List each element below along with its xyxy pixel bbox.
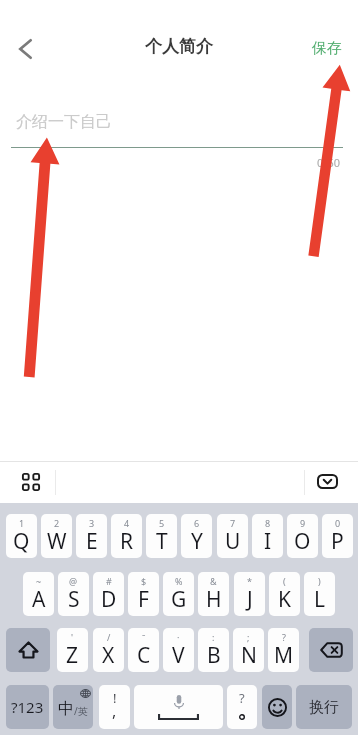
button[interactable]: ? — [227, 685, 257, 729]
staticText: A — [32, 585, 46, 614]
button[interactable]: Hide keyboard — [312, 467, 342, 495]
button[interactable]: ! — [99, 685, 130, 729]
button[interactable]: / — [93, 628, 124, 672]
staticText: T — [156, 527, 168, 556]
button[interactable]: Keyboard panels — [16, 467, 45, 496]
button[interactable]: Space — [134, 685, 223, 729]
staticText: : — [212, 631, 215, 643]
staticText: V — [172, 641, 185, 670]
staticText: G — [171, 585, 187, 614]
button[interactable]: 5 — [146, 514, 177, 558]
staticText: ' — [71, 631, 74, 643]
staticText: , — [112, 700, 117, 722]
button[interactable]: 1 — [6, 514, 37, 558]
staticText: 2 — [54, 517, 60, 529]
staticText: & — [210, 575, 217, 587]
button[interactable]: ?123 — [6, 685, 49, 729]
staticText: B — [207, 641, 221, 670]
staticText: D — [101, 585, 117, 614]
staticText: · — [177, 631, 180, 643]
staticText: Q — [13, 527, 30, 556]
staticText: ) — [318, 575, 321, 587]
button[interactable]: 9 — [287, 514, 318, 558]
button[interactable]: $ — [128, 572, 159, 616]
staticText: 9 — [300, 517, 306, 529]
button[interactable]: ~ — [23, 572, 54, 616]
staticText: ? — [239, 689, 245, 707]
button[interactable]: # — [93, 572, 124, 616]
staticText: 0/50 — [317, 155, 340, 170]
staticText: M — [274, 641, 294, 670]
button[interactable]: Backspace — [309, 628, 353, 672]
button[interactable]: · — [163, 628, 194, 672]
button[interactable]: 4 — [111, 514, 142, 558]
staticText: 6 — [194, 517, 200, 529]
staticText: /英 — [74, 704, 88, 718]
button[interactable]: @ — [58, 572, 89, 616]
button[interactable]: 保存 — [312, 39, 342, 58]
staticText: I — [264, 527, 272, 556]
button[interactable]: Shift — [6, 628, 50, 672]
staticText: ~ — [36, 575, 42, 587]
button[interactable]: & — [198, 572, 229, 616]
staticText: 3 — [89, 517, 95, 529]
button[interactable]: Emoji — [262, 685, 292, 729]
button[interactable]: ; — [233, 628, 264, 672]
staticText: 个人简介 — [145, 36, 213, 57]
button[interactable]: 7 — [217, 514, 248, 558]
staticText: U — [225, 527, 241, 556]
button[interactable]: ? — [268, 628, 299, 672]
button[interactable]: : — [198, 628, 229, 672]
staticText: 5 — [159, 517, 165, 529]
button[interactable]: Switch Chinese English input — [53, 685, 93, 729]
staticText: Z — [66, 641, 79, 670]
staticText: 1 — [19, 517, 25, 529]
staticText: 8 — [265, 517, 271, 529]
staticText: W — [47, 527, 67, 556]
staticText: P — [331, 527, 344, 556]
staticText: $ — [141, 575, 147, 587]
staticText: @ — [69, 575, 78, 587]
staticText: E — [86, 527, 98, 556]
staticText: / — [107, 631, 111, 643]
button[interactable]: ˉ — [128, 628, 159, 672]
staticText: C — [137, 641, 151, 670]
staticText: * — [247, 575, 252, 587]
staticText: 保存 — [312, 39, 342, 58]
staticText: ; — [247, 631, 250, 643]
staticText: F — [138, 585, 149, 614]
button[interactable]: ' — [57, 628, 88, 672]
button[interactable]: * — [234, 572, 265, 616]
staticText: # — [106, 575, 112, 587]
staticText: 0 — [335, 517, 341, 529]
staticText: % — [175, 575, 183, 587]
staticText: K — [278, 585, 291, 614]
staticText: 介绍一下自己 — [16, 112, 112, 132]
staticText: X — [102, 641, 115, 670]
button[interactable]: 3 — [76, 514, 107, 558]
staticText: 7 — [230, 517, 236, 529]
staticText: ? — [282, 631, 286, 643]
staticText: ?123 — [11, 697, 44, 717]
staticText: 中 — [58, 699, 74, 719]
button[interactable]: 换行 — [296, 685, 352, 729]
button[interactable]: 6 — [181, 514, 212, 558]
button[interactable]: 2 — [41, 514, 72, 558]
button[interactable]: % — [163, 572, 194, 616]
staticText: H — [206, 585, 222, 614]
staticText: J — [247, 585, 253, 614]
button[interactable]: ) — [304, 572, 335, 616]
button[interactable]: 0 — [322, 514, 353, 558]
staticText: O — [294, 527, 311, 556]
staticText: R — [120, 527, 134, 556]
button[interactable]: 8 — [252, 514, 283, 558]
staticText: 换行 — [309, 698, 339, 717]
button[interactable]: Back — [5, 31, 45, 67]
staticText: Y — [191, 527, 203, 556]
staticText: S — [68, 585, 80, 614]
staticText: ( — [283, 575, 286, 587]
button[interactable]: ( — [269, 572, 300, 616]
staticText: ˉ — [142, 631, 146, 643]
staticText: L — [314, 585, 326, 614]
staticText: ! — [113, 689, 117, 707]
